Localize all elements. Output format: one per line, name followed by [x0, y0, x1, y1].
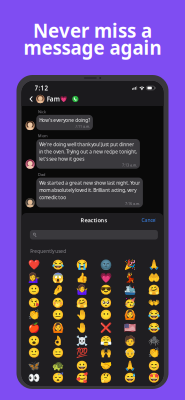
- button[interactable]: ☠️: [70, 334, 94, 347]
- staticText: 😎: [100, 284, 112, 295]
- staticText: 🤗: [76, 297, 88, 308]
- staticText: 🤲: [148, 272, 160, 283]
- staticText: Reactions: [80, 216, 107, 224]
- button[interactable]: 🙏: [142, 258, 166, 271]
- staticText: 🍎: [28, 322, 40, 333]
- staticText: in the oven. Trying out a new recipe ton…: [39, 148, 137, 155]
- staticText: Nick: [38, 109, 46, 114]
- button[interactable]: 😴: [46, 372, 70, 384]
- button[interactable]: 🤩: [142, 372, 166, 384]
- staticText: How's everyone doing?: [39, 117, 90, 123]
- button[interactable]: 🙏: [118, 359, 142, 372]
- button[interactable]: ❤️: [22, 258, 46, 271]
- staticText: ❌: [100, 322, 112, 333]
- button[interactable]: 🕷️: [142, 334, 166, 347]
- button[interactable]: 😱: [46, 271, 70, 284]
- staticText: ☠️: [76, 335, 88, 346]
- button[interactable]: Cancel: [138, 215, 159, 225]
- button[interactable]: 👀: [22, 372, 46, 384]
- staticText: 😶: [100, 309, 112, 321]
- staticText: Dad: [38, 172, 45, 177]
- button[interactable]: 🙆: [46, 321, 70, 334]
- staticText: comedic too: [39, 194, 66, 201]
- button[interactable]: 🇺🇸: [118, 321, 142, 334]
- staticText: 😊: [148, 360, 160, 371]
- staticText: 😴: [52, 372, 64, 384]
- button[interactable]: 😀: [70, 359, 94, 372]
- staticText: ❤️: [28, 259, 40, 270]
- button[interactable]: 👍: [70, 271, 94, 284]
- staticText: 🦋: [28, 360, 40, 371]
- staticText: 🌚: [100, 259, 112, 270]
- button[interactable]: 🤔: [94, 372, 118, 384]
- button[interactable]: 💁‍♀️: [22, 271, 46, 284]
- staticText: 💗: [100, 272, 112, 283]
- button[interactable]: 🤭: [46, 296, 70, 309]
- staticText: 7:13 a.m.: [122, 163, 137, 167]
- staticText: 7:11 a.m.: [75, 125, 90, 129]
- button[interactable]: 😮: [22, 334, 46, 347]
- button[interactable]: 😂: [142, 321, 166, 334]
- staticText: 7:12: [34, 84, 48, 92]
- button[interactable]: 😅: [118, 372, 142, 384]
- button[interactable]: 🧑: [118, 334, 142, 347]
- button[interactable]: 🛳️: [118, 284, 142, 296]
- button[interactable]: 🤌: [46, 284, 70, 296]
- staticText: Never miss a: [33, 18, 152, 43]
- button[interactable]: 💗: [94, 271, 118, 284]
- button[interactable]: 😑: [46, 347, 70, 359]
- staticText: 😂: [148, 322, 160, 333]
- staticText: 🤩: [148, 372, 160, 384]
- button[interactable]: 👐: [142, 296, 166, 309]
- button[interactable]: 🙂: [22, 347, 46, 359]
- button[interactable]: 😐: [46, 309, 70, 321]
- button[interactable]: 🎉: [118, 258, 142, 271]
- button[interactable]: 🌚: [94, 258, 118, 271]
- staticText: Frequently used: [30, 248, 66, 254]
- button[interactable]: 🤚: [70, 309, 94, 321]
- staticText: 🐢: [52, 360, 64, 371]
- staticText: 🛳️: [124, 284, 136, 295]
- button[interactable]: 🤗: [142, 284, 166, 296]
- button[interactable]: 😊: [142, 359, 166, 372]
- button[interactable]: 😎: [94, 284, 118, 296]
- button[interactable]: 🙆: [118, 309, 142, 321]
- button[interactable]: 🤲: [142, 271, 166, 284]
- staticText: let's see how it goes: [39, 156, 84, 162]
- button[interactable]: Open in WhatsApp: [71, 94, 80, 103]
- button[interactable]: 🥳: [118, 296, 142, 309]
- button[interactable]: 🙌: [94, 347, 118, 359]
- button[interactable]: ❌: [94, 321, 118, 334]
- button[interactable]: 🤚: [70, 321, 94, 334]
- button[interactable]: 😘: [22, 296, 46, 309]
- button[interactable]: 🥺: [94, 296, 118, 309]
- staticText: 😅: [124, 372, 136, 384]
- button[interactable]: 💯: [70, 347, 94, 359]
- button[interactable]: 🤷‍♀️: [70, 284, 94, 296]
- staticText: 🇺🇸: [124, 322, 136, 333]
- button[interactable]: 🍎: [22, 321, 46, 334]
- button[interactable]: 🙂: [22, 284, 46, 296]
- button[interactable]: 💃: [118, 271, 142, 284]
- button[interactable]: 🥰: [70, 372, 94, 384]
- button[interactable]: 🦋: [22, 359, 46, 372]
- button[interactable]: Back: [26, 93, 35, 105]
- button[interactable]: 🤗: [70, 296, 94, 309]
- staticText: 🙏: [148, 259, 160, 270]
- button[interactable]: 🐢: [46, 359, 70, 372]
- button[interactable]: 👌: [46, 334, 70, 347]
- button[interactable]: 👏: [22, 309, 46, 321]
- button[interactable]: 😂: [46, 258, 70, 271]
- button[interactable]: 👴: [118, 347, 142, 359]
- staticText: We started a great new show last night. …: [39, 180, 140, 186]
- staticText: 😤: [100, 335, 112, 346]
- staticText: 👴: [124, 347, 136, 358]
- button[interactable]: 👏: [142, 347, 166, 359]
- button[interactable]: 🤝: [94, 359, 118, 372]
- staticText: 👀: [28, 372, 40, 384]
- button[interactable]: 😂: [142, 309, 166, 321]
- button[interactable]: 😶: [94, 309, 118, 321]
- button[interactable]: 😭: [70, 258, 94, 271]
- button[interactable]: 😤: [94, 334, 118, 347]
- staticText: 🥳: [124, 297, 136, 308]
